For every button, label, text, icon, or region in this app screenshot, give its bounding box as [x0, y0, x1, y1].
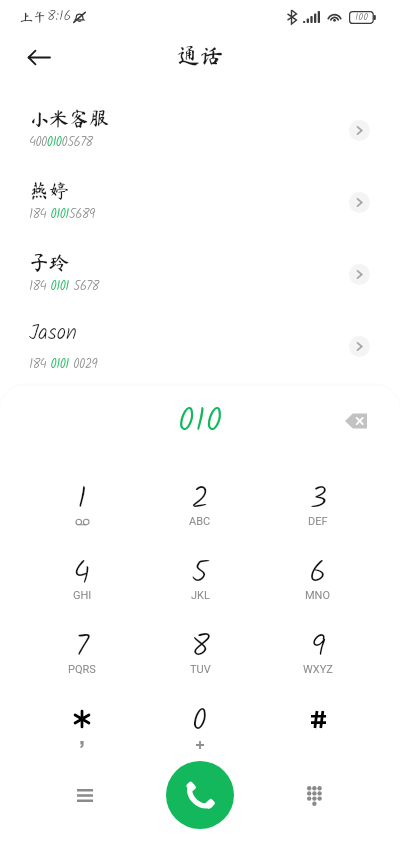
button[interactable]: 小米客服 [0, 94, 400, 166]
staticText: 6 [309, 549, 327, 598]
button[interactable]: 8 [141, 619, 259, 693]
staticText: 5 [191, 549, 209, 598]
button[interactable] [259, 693, 377, 767]
staticText: 8:16 [47, 5, 72, 27]
staticText: 4 [73, 549, 91, 598]
staticText: 184 01015689 [29, 204, 95, 225]
staticText: 上午 [20, 11, 47, 24]
button[interactable]: Contact details [349, 192, 370, 213]
staticText: 3 [309, 475, 328, 524]
staticText: 100 [355, 9, 369, 25]
staticText: PQRS [68, 663, 96, 676]
staticText: JKL [191, 589, 210, 602]
button[interactable]: Contact details [349, 264, 370, 285]
button[interactable] [23, 693, 141, 767]
staticText: DEF [308, 515, 328, 528]
staticText: WXYZ [303, 663, 333, 676]
staticText: GHI [73, 589, 92, 602]
staticText: 燕婷 [29, 180, 69, 200]
staticText: 9 [311, 623, 326, 672]
button[interactable]: 0 [141, 693, 259, 767]
button[interactable]: 5 [141, 545, 259, 619]
button[interactable]: 4 [23, 545, 141, 619]
button[interactable]: 1 [23, 471, 141, 545]
staticText: 40001005678 [29, 132, 93, 153]
button[interactable]: 子玲 [0, 238, 400, 310]
staticText: 2 [191, 475, 209, 524]
button[interactable]: Contact details [349, 120, 370, 141]
staticText: TUV [190, 663, 211, 676]
button[interactable]: Backspace [336, 401, 376, 441]
staticText: 184 0101 5678 [29, 276, 99, 297]
button[interactable]: Call [166, 761, 234, 829]
staticText: Jason [29, 317, 77, 350]
button[interactable]: 6 [259, 545, 377, 619]
button[interactable]: 3 [259, 471, 377, 545]
button[interactable]: 7 [23, 619, 141, 693]
button[interactable]: Contact details [349, 336, 370, 357]
staticText: 7 [75, 623, 90, 672]
button[interactable]: 2 [141, 471, 259, 545]
staticText: MNO [305, 589, 331, 602]
staticText: ABC [189, 515, 211, 528]
staticText: 8 [191, 623, 210, 672]
staticText: 通话 [177, 44, 223, 67]
button[interactable]: Jason [0, 310, 400, 382]
staticText: 子玲 [29, 252, 69, 272]
button[interactable]: 燕婷 [0, 166, 400, 238]
staticText: 小米客服 [29, 108, 109, 128]
button[interactable]: 9 [259, 619, 377, 693]
staticText: 010 [178, 395, 223, 449]
button[interactable]: Call log [63, 773, 107, 817]
staticText: 184 0101 0029 [29, 354, 97, 375]
staticText: 1 [77, 475, 87, 524]
staticText: 0 [192, 697, 208, 746]
button[interactable]: Back [17, 35, 61, 79]
button[interactable]: Dialpad [292, 773, 336, 817]
